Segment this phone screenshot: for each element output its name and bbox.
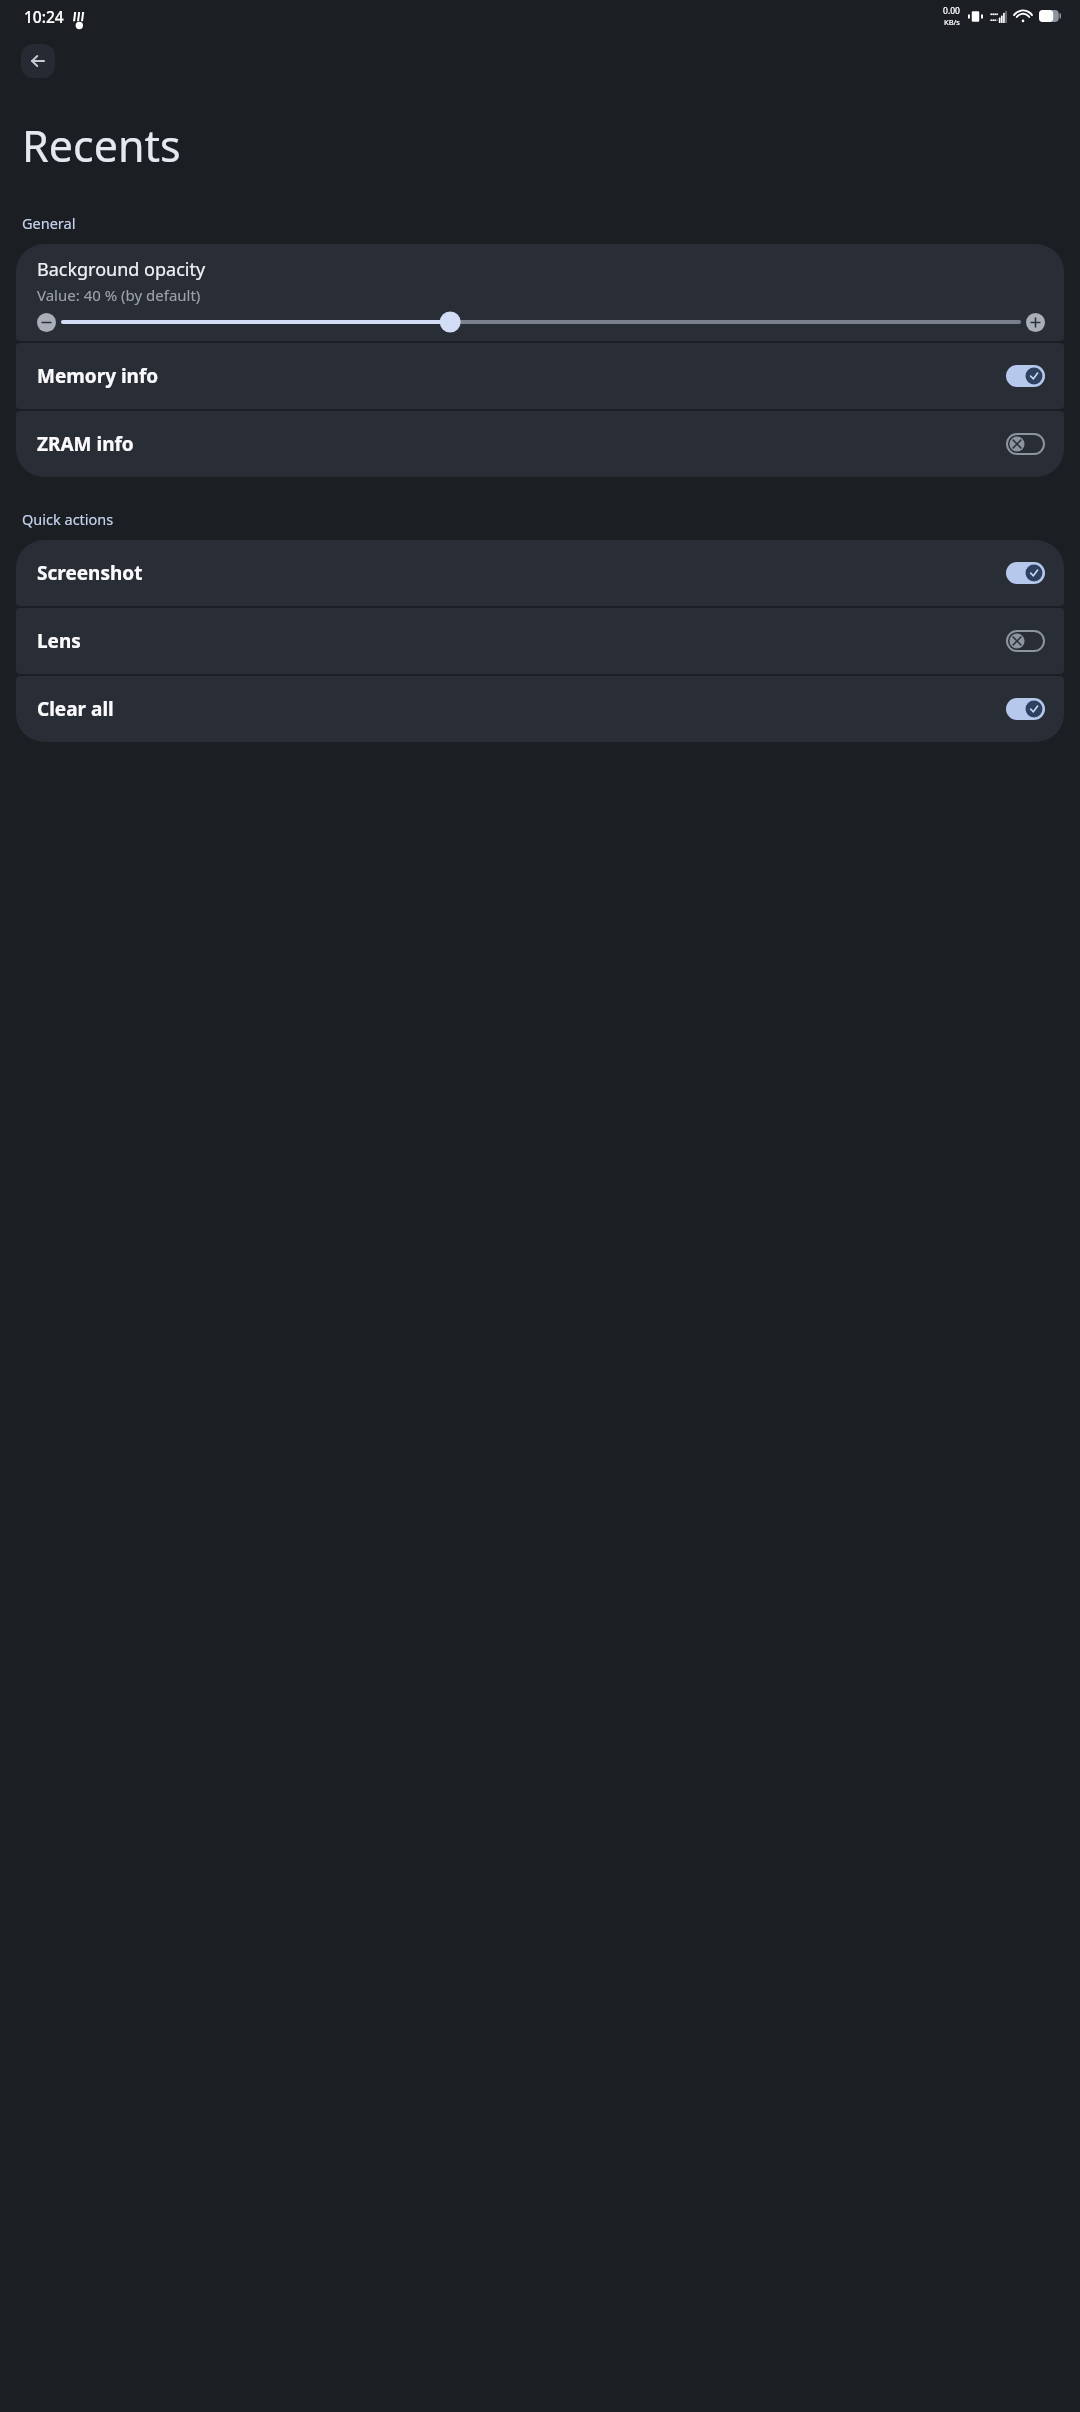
staticText: KB/s bbox=[944, 17, 960, 27]
staticText: Recents bbox=[22, 116, 181, 175]
staticText: Background opacity bbox=[37, 257, 206, 282]
button[interactable]: Decrease bbox=[37, 313, 56, 332]
button[interactable]: Increase bbox=[1026, 313, 1045, 332]
staticText: General bbox=[22, 213, 76, 233]
button[interactable]: Lens bbox=[16, 608, 1064, 674]
staticText: Lens bbox=[37, 628, 81, 654]
button[interactable]: ZRAM info bbox=[16, 411, 1064, 477]
button[interactable]: Off bbox=[1006, 630, 1045, 652]
button[interactable]: On bbox=[1006, 698, 1045, 720]
staticText: Quick actions bbox=[22, 509, 114, 529]
staticText: 10:24 bbox=[24, 6, 64, 27]
button[interactable]: On bbox=[1006, 365, 1045, 387]
button[interactable]: Off bbox=[1006, 433, 1045, 455]
button[interactable]: Background opacity bbox=[16, 244, 1064, 341]
button[interactable]: On bbox=[1006, 562, 1045, 584]
staticText: 0.00 bbox=[943, 5, 960, 17]
staticText: Memory info bbox=[37, 363, 159, 389]
staticText: Value: 40 % (by default) bbox=[37, 285, 201, 305]
staticText: Screenshot bbox=[37, 560, 143, 586]
button[interactable] bbox=[63, 312, 1019, 332]
staticText: Clear all bbox=[37, 696, 114, 722]
button[interactable]: Memory info bbox=[16, 343, 1064, 409]
staticText: ZRAM info bbox=[37, 431, 134, 457]
button[interactable]: Back bbox=[21, 44, 55, 78]
button[interactable]: Screenshot bbox=[16, 540, 1064, 606]
button[interactable]: Clear all bbox=[16, 676, 1064, 742]
